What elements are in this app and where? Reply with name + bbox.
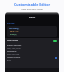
staticText: Dark mode [7, 39, 18, 42]
staticText: val x = 12 [10, 30, 19, 33]
button[interactable]: Accent colour [5, 55, 59, 61]
button[interactable]: Dark mode [5, 38, 59, 43]
staticText: Customisable Editor [0, 2, 64, 7]
button[interactable]: fun main() { [7, 26, 57, 37]
staticText: Editor [29, 16, 36, 19]
staticText: Accent colour [7, 56, 21, 59]
staticText: Light and Dark Mode [0, 8, 64, 11]
button[interactable]: Editor settings [5, 43, 59, 49]
button[interactable]: Keyboard [5, 49, 59, 55]
staticText: Font, tabs, wrap [7, 47, 21, 49]
staticText: Editor settings [7, 44, 22, 47]
staticText: Keyboard [7, 50, 17, 53]
staticText: Preview [7, 22, 15, 25]
staticText: print(x) [10, 33, 17, 36]
staticText: Extra keys row [7, 53, 20, 55]
staticText: Blue [7, 59, 11, 61]
staticText: fun main() { [9, 27, 20, 30]
